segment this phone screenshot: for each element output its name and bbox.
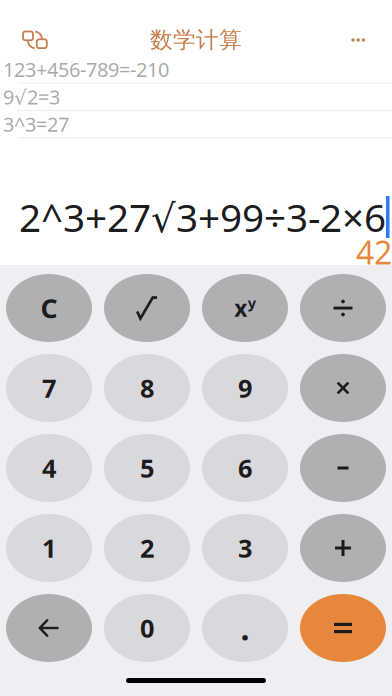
staticText: 123+456-789=-210: [3, 56, 169, 83]
staticText: 0: [140, 611, 154, 645]
staticText: .: [240, 607, 249, 649]
staticText: 数学计算: [150, 26, 242, 54]
staticText: 6: [238, 451, 252, 485]
staticText: 9: [238, 371, 252, 405]
staticText: x: [234, 293, 247, 323]
staticText: 3^3=27: [3, 111, 69, 137]
staticText: y: [248, 293, 256, 312]
staticText: C: [40, 290, 57, 326]
staticText: 42: [356, 231, 392, 273]
staticText: 8: [140, 371, 154, 405]
staticText: 3: [238, 531, 252, 565]
staticText: 2^3+27√3+99÷3-2×6: [19, 191, 386, 243]
staticText: 7: [42, 371, 56, 405]
staticText: 1: [42, 531, 56, 565]
staticText: 5: [140, 451, 154, 485]
staticText: 2: [140, 531, 154, 565]
staticText: 4: [42, 451, 56, 485]
staticText: 9√2=3: [3, 83, 60, 110]
